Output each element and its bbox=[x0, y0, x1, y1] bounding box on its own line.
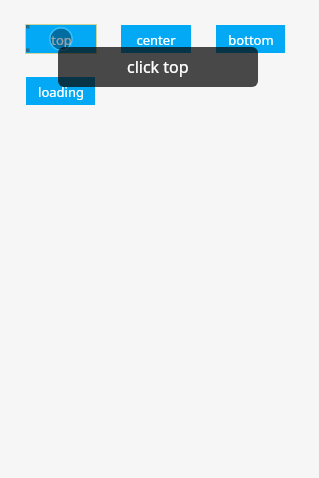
button[interactable]: center bbox=[121, 25, 191, 53]
button[interactable]: top bbox=[26, 25, 96, 53]
staticText: click top bbox=[127, 56, 189, 78]
button[interactable]: bottom bbox=[216, 25, 285, 53]
button[interactable]: loading bbox=[26, 77, 95, 105]
staticText: center bbox=[136, 31, 176, 49]
staticText: bottom bbox=[228, 31, 274, 49]
staticText: loading bbox=[38, 83, 84, 101]
staticText: top bbox=[51, 31, 72, 49]
